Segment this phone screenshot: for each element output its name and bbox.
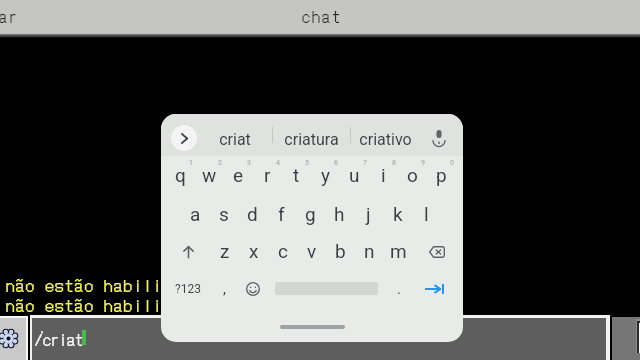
button[interactable]: . [384, 271, 413, 307]
button[interactable]: t [282, 157, 311, 193]
staticText: z [220, 240, 230, 262]
staticText: 7 [363, 159, 367, 167]
button[interactable]: n [355, 233, 384, 269]
staticText: criatura [284, 130, 339, 149]
button[interactable]: Emoji [238, 271, 267, 307]
staticText: k [393, 203, 403, 225]
button[interactable]: q [166, 157, 195, 193]
staticText: 3 [247, 159, 251, 167]
staticText: j [366, 203, 371, 225]
button[interactable]: k [383, 196, 412, 232]
staticText: w [202, 164, 217, 186]
staticText: n [364, 240, 375, 262]
button[interactable]: y [311, 157, 340, 193]
staticText: u [349, 164, 360, 186]
button[interactable]: a [181, 196, 210, 232]
staticText: g [305, 203, 316, 225]
staticText: criat [219, 130, 251, 149]
staticText: f [278, 203, 285, 225]
button[interactable]: r [253, 157, 282, 193]
button[interactable]: i [369, 157, 398, 193]
staticText: criativo [359, 130, 412, 149]
button[interactable]: v [297, 233, 326, 269]
staticText: c [278, 240, 288, 262]
button[interactable]: criativo [349, 118, 421, 160]
button[interactable]: s [209, 196, 238, 232]
button[interactable]: ?123 [166, 271, 210, 307]
button[interactable]: x [239, 233, 268, 269]
button[interactable]: Send [612, 317, 640, 360]
staticText: x [249, 240, 259, 262]
staticText: não estão habilitados [6, 292, 212, 317]
staticText: a [190, 203, 201, 225]
staticText: 8 [392, 159, 396, 167]
staticText: b [335, 240, 346, 262]
staticText: e [233, 164, 244, 186]
button[interactable]: u [340, 157, 369, 193]
staticText: o [407, 164, 418, 186]
staticText: p [436, 164, 447, 186]
button[interactable]: criat [199, 118, 271, 160]
button[interactable]: Expand suggestions [171, 125, 197, 151]
button[interactable]: m [384, 233, 413, 269]
staticText: h [334, 203, 345, 225]
staticText: ?123 [175, 282, 201, 296]
button[interactable]: f [267, 196, 296, 232]
button[interactable]: b [326, 233, 355, 269]
staticText: s [219, 203, 229, 225]
staticText: m [390, 240, 407, 262]
staticText: 6 [334, 159, 338, 167]
staticText: 2 [218, 159, 222, 167]
staticText: chat [302, 4, 343, 27]
staticText: d [247, 203, 258, 225]
staticText: 9 [421, 159, 425, 167]
staticText: . [397, 280, 401, 298]
button[interactable]: Settings [0, 318, 26, 360]
button[interactable]: Voice input [425, 123, 453, 151]
staticText: q [175, 164, 186, 186]
button[interactable]: l [412, 196, 441, 232]
button[interactable]: z [210, 233, 239, 269]
button[interactable]: d [238, 196, 267, 232]
staticText: , [223, 280, 226, 298]
button[interactable]: Space [270, 270, 382, 306]
button[interactable]: c [268, 233, 297, 269]
button[interactable]: w [195, 157, 224, 193]
button[interactable]: , [210, 271, 239, 307]
button[interactable]: criatura [275, 118, 347, 160]
button[interactable]: j [354, 196, 383, 232]
button[interactable]: g [296, 196, 325, 232]
button[interactable]: Shift [167, 234, 209, 270]
staticText: 0 [450, 159, 454, 167]
button[interactable]: Backspace [415, 234, 457, 270]
staticText: 4 [276, 159, 280, 167]
staticText: i [381, 164, 386, 186]
button[interactable]: /criat [32, 318, 606, 360]
staticText: 1 [189, 159, 193, 167]
button[interactable]: Enter [413, 271, 455, 307]
staticText: l [424, 203, 429, 225]
button[interactable]: o [398, 157, 427, 193]
staticText: 5 [305, 159, 309, 167]
staticText: v [307, 240, 317, 262]
staticText: y [321, 164, 330, 186]
staticText: /criat [35, 327, 84, 350]
staticText: r [264, 164, 271, 186]
staticText: não estão habilitados [6, 272, 212, 297]
staticText: t [293, 164, 300, 186]
staticText: ar [0, 4, 20, 27]
button[interactable]: p [427, 157, 456, 193]
button[interactable]: e [224, 157, 253, 193]
button[interactable]: h [325, 196, 354, 232]
